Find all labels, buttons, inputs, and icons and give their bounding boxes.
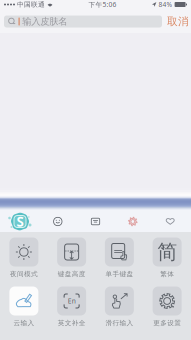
staticText: 英文补全 xyxy=(58,319,86,327)
staticText: 84% xyxy=(157,0,175,9)
staticText: 滑行输入 xyxy=(105,319,133,327)
staticText: 单手键盘 xyxy=(105,270,133,278)
button[interactable]: 夜间模式 xyxy=(0,237,48,278)
staticText: 下午5:06 xyxy=(88,0,116,9)
button[interactable]: Sogou input method xyxy=(5,211,35,232)
button[interactable]: Clipboard xyxy=(83,211,107,232)
staticText: En xyxy=(68,297,76,305)
button[interactable]: 键盘高度 xyxy=(48,237,96,278)
staticText: 中国联通 xyxy=(15,0,47,9)
staticText: S xyxy=(16,213,23,230)
button[interactable]: 简 xyxy=(143,237,191,278)
button[interactable]: 更多设置 xyxy=(143,286,191,327)
button[interactable]: Emoji xyxy=(46,211,70,232)
staticText: 输入皮肤名 xyxy=(22,16,67,27)
staticText: 云输入 xyxy=(13,319,34,327)
staticText: 取消 xyxy=(167,15,189,28)
button[interactable]: Favorites xyxy=(158,211,182,232)
staticText: 繁体 xyxy=(160,270,174,278)
button[interactable]: 取消 xyxy=(166,13,190,29)
button[interactable]: 单手键盘 xyxy=(95,237,143,278)
staticText: 键盘高度 xyxy=(58,270,86,278)
staticText: 夜间模式 xyxy=(10,270,38,278)
button[interactable]: 滑行输入 xyxy=(95,286,143,327)
button[interactable]: En xyxy=(48,286,96,327)
button[interactable]: Settings xyxy=(121,211,145,232)
staticText: 更多设置 xyxy=(153,319,181,327)
staticText: 简 xyxy=(157,240,177,264)
button[interactable]: 云输入 xyxy=(0,286,48,327)
